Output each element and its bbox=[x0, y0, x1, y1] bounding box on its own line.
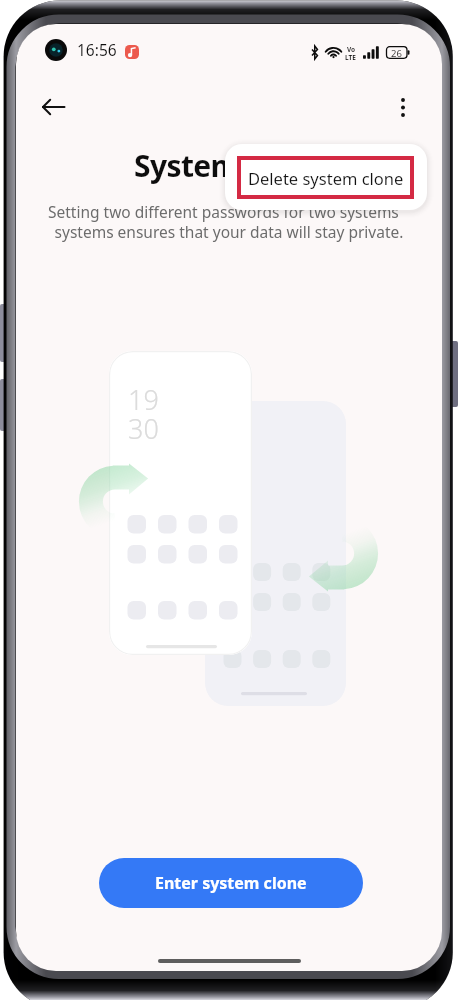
button[interactable]: Back bbox=[31, 85, 75, 129]
staticText: Vo bbox=[347, 45, 356, 54]
button[interactable]: Enter system clone bbox=[99, 858, 363, 908]
button[interactable]: More options bbox=[381, 85, 425, 129]
staticText: System clone bbox=[16, 145, 442, 186]
staticText: Enter system clone bbox=[155, 872, 307, 894]
staticText: 26 bbox=[391, 47, 402, 60]
staticText: LTE bbox=[345, 53, 356, 62]
staticText: Setting two different passwords for two … bbox=[48, 201, 399, 222]
staticText: 19 30 bbox=[128, 381, 159, 447]
staticText: systems ensures that your data will stay… bbox=[16, 221, 442, 242]
staticText: Delete system clone bbox=[248, 167, 404, 189]
staticText: 16:56 bbox=[77, 39, 117, 60]
button[interactable]: Delete system clone bbox=[237, 156, 414, 199]
